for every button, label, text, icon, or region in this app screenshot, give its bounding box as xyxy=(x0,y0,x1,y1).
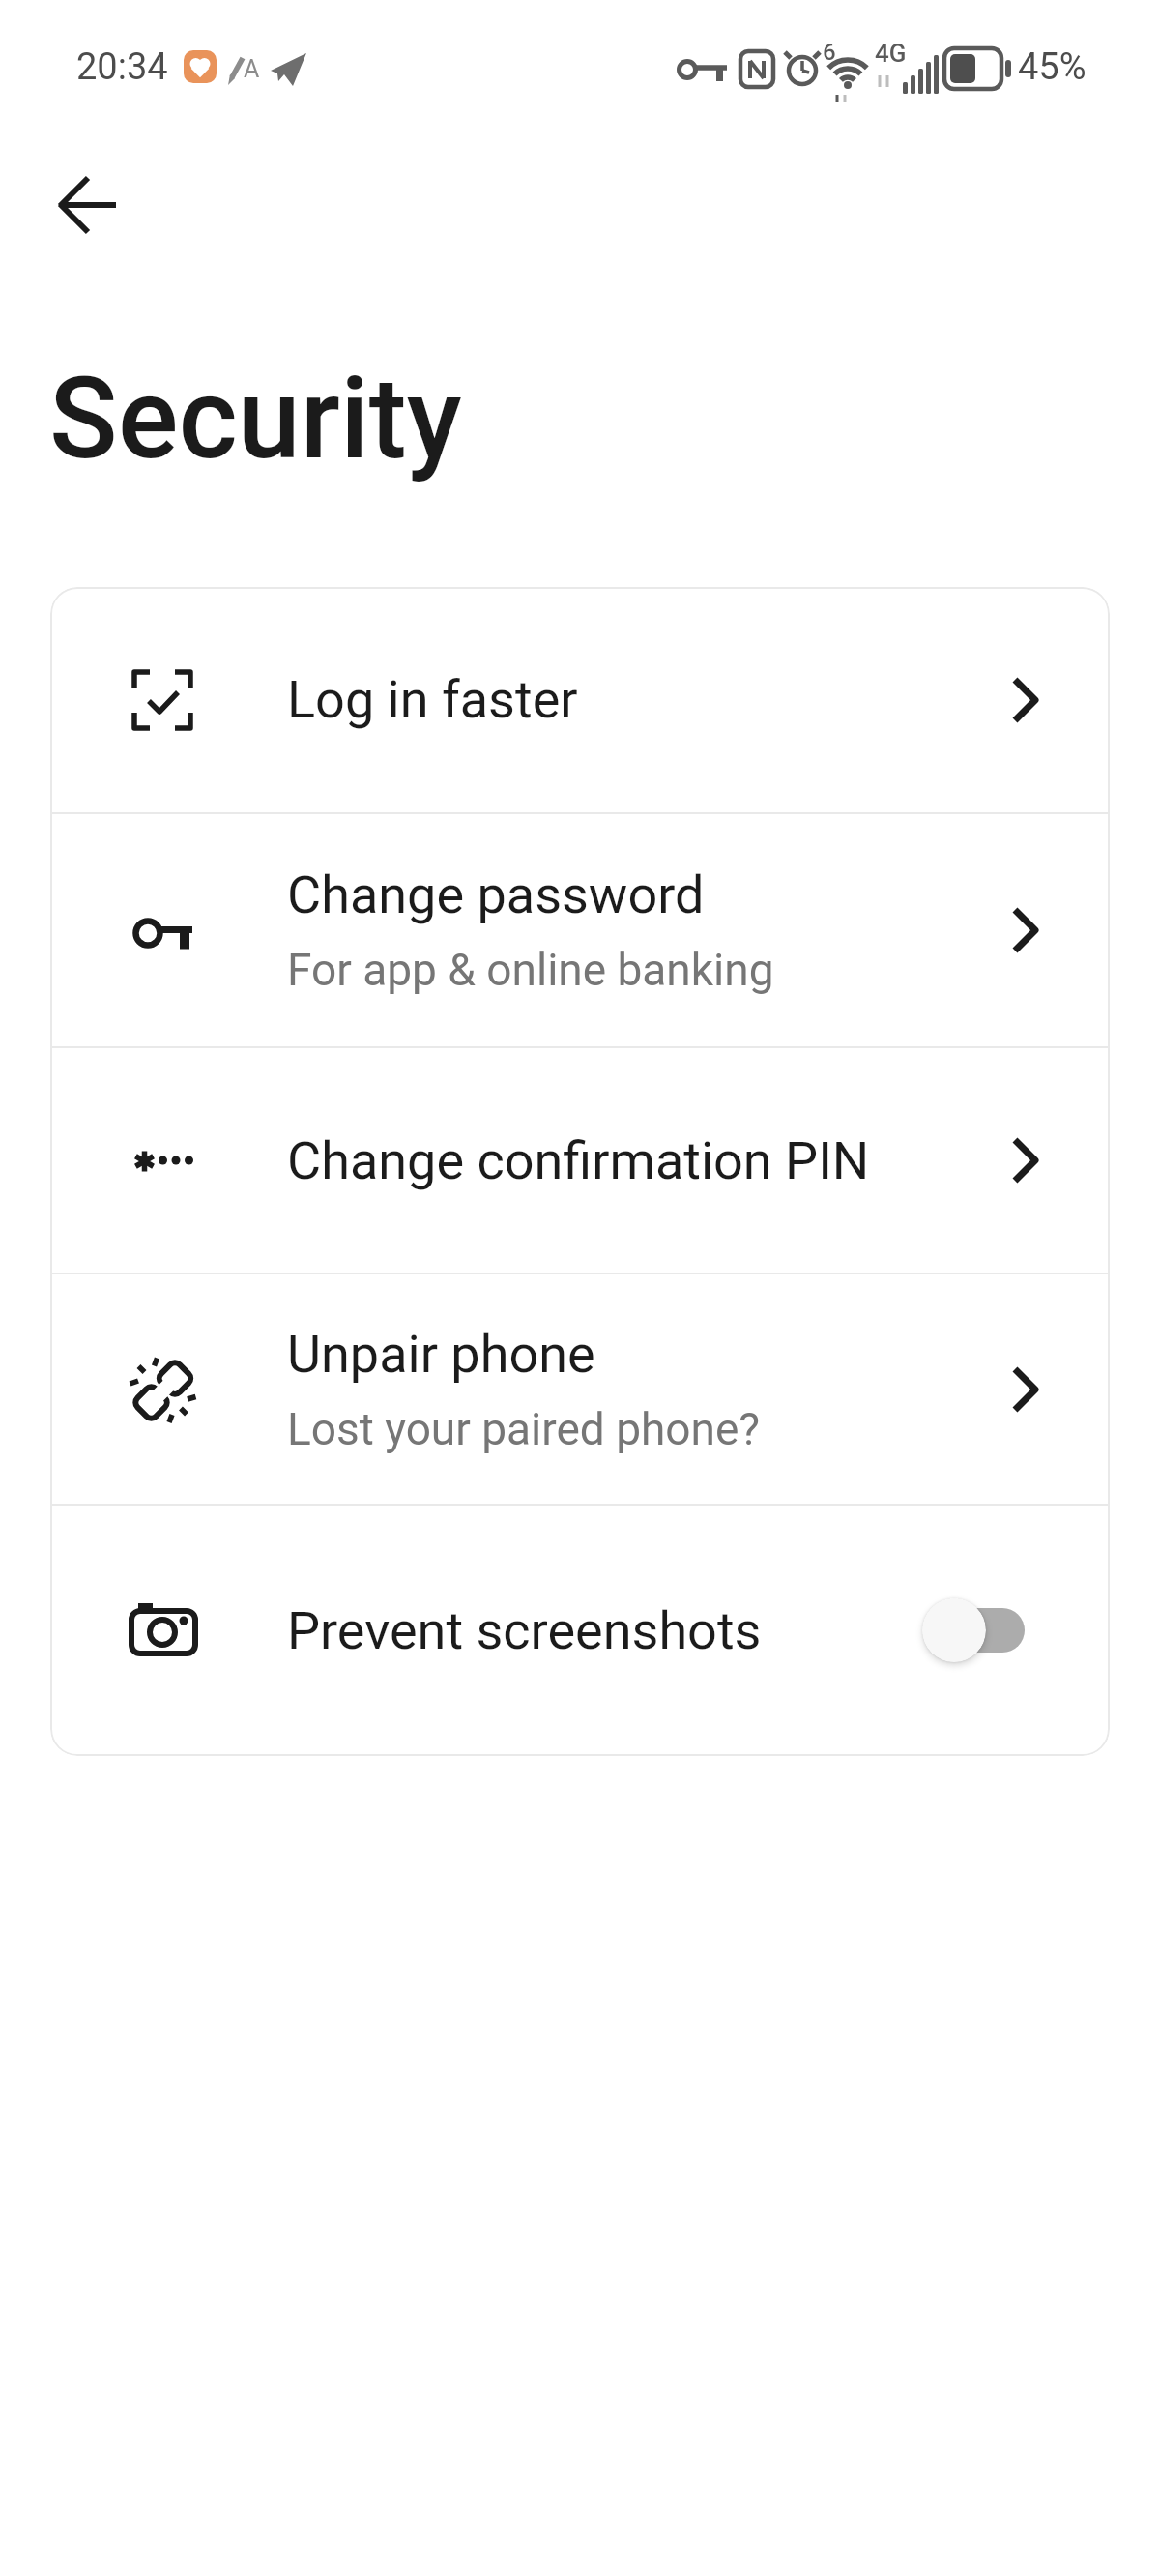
button[interactable]: Change confirmation PIN xyxy=(50,1048,1110,1273)
staticText: 20:34 xyxy=(76,45,168,89)
button[interactable]: Unpair phone xyxy=(50,1274,1110,1504)
staticText: 45% xyxy=(1018,45,1087,89)
staticText: Unpair phone xyxy=(287,1324,595,1385)
staticText: Log in faster xyxy=(287,669,578,730)
button[interactable]: Log in faster xyxy=(50,587,1110,812)
staticText: 6 xyxy=(823,39,836,66)
button[interactable] xyxy=(35,162,141,251)
staticText: Change confirmation PIN xyxy=(287,1130,870,1191)
button[interactable] xyxy=(922,1598,1025,1662)
staticText: Change password xyxy=(287,864,705,925)
staticText: A xyxy=(244,55,260,83)
staticText: Lost your paired phone? xyxy=(287,1403,761,1455)
button[interactable]: Prevent screenshots xyxy=(50,1506,1110,1755)
staticText: Prevent screenshots xyxy=(287,1600,762,1661)
staticText: Security xyxy=(49,352,462,484)
button[interactable]: Change password xyxy=(50,814,1110,1046)
staticText: 4G xyxy=(875,39,907,68)
staticText: For app & online banking xyxy=(287,944,774,996)
